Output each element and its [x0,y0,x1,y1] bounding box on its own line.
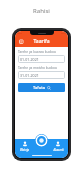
staticText: 01-01-2021 [20,57,39,62]
staticText: Tafuta [33,85,45,90]
button[interactable]: Akaunti [48,139,68,153]
button[interactable]: Tafuta [18,83,65,92]
staticText: Tarehe ya mwisho kuokoa [18,66,57,70]
button[interactable]: 01-01-2021 [18,55,65,63]
staticText: Akaunti [53,148,64,152]
button[interactable]: Add [35,134,48,147]
button[interactable]: Menu [18,38,25,45]
staticText: Rahisi [33,7,50,15]
staticText: Wateja [20,148,29,152]
button[interactable]: 31-01-2021 [18,71,65,79]
staticText: 31-01-2021 [20,73,39,78]
staticText: Taarifa [33,38,50,45]
staticText: Tarehe ya kuanza kuokoa [18,50,56,54]
button[interactable]: Wateja [15,139,34,153]
